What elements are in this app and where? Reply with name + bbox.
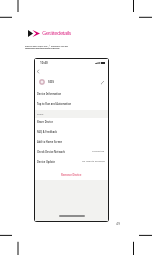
button[interactable]: Add to Home Screen	[35, 138, 108, 148]
staticText: Device Update	[37, 160, 56, 163]
staticText: Tap to Run and Automation	[37, 102, 72, 105]
staticText: Share	[37, 113, 44, 116]
button[interactable]: Edit name	[100, 80, 104, 84]
button[interactable]: Share Device	[35, 118, 108, 128]
staticText: Remove Device	[61, 173, 82, 177]
staticText: Connected	[92, 150, 105, 153]
staticText: 49	[116, 221, 121, 226]
staticText: No update available	[82, 160, 105, 163]
button[interactable]: Back	[36, 69, 40, 73]
staticText: Add to Home Screen	[37, 140, 63, 143]
staticText: Share Device	[37, 120, 53, 123]
staticText: Device Information	[37, 92, 62, 95]
staticText: SOS	[48, 80, 55, 84]
button[interactable]: Remove Device	[35, 168, 108, 180]
button[interactable]: Check Device Network	[35, 148, 108, 158]
button[interactable]: Tap to Run and Automation	[35, 100, 108, 110]
staticText: Gerätedetails	[42, 29, 71, 37]
staticText: Durch den Klick auf ╱ können Sie die	[25, 44, 68, 47]
staticText: 10:40	[40, 61, 48, 65]
button[interactable]: Device Information	[35, 90, 108, 100]
staticText: folgenden Einstellungen machen:	[25, 46, 60, 49]
staticText: FAQ & Feedback	[37, 130, 58, 133]
button[interactable]: Device Update	[35, 158, 108, 168]
button[interactable]: FAQ & Feedback	[35, 128, 108, 138]
staticText: Check Device Network	[37, 150, 66, 153]
